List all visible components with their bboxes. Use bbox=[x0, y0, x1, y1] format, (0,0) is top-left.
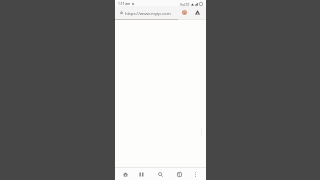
staticText: VoLTE bbox=[180, 2, 190, 6]
button[interactable]: More options bbox=[189, 168, 201, 180]
staticText: https://www.myip.com bbox=[125, 10, 171, 16]
staticText: 1:17 am bbox=[118, 2, 131, 6]
other: Site information bbox=[120, 11, 123, 14]
button[interactable]: Search bbox=[154, 168, 166, 180]
button[interactable]: Tabs bbox=[173, 168, 185, 180]
button[interactable]: Bookmarks bbox=[135, 168, 147, 180]
button[interactable]: Brave Rewards bbox=[193, 8, 202, 17]
button[interactable]: Brave Shields bbox=[180, 8, 189, 17]
button[interactable]: Home bbox=[119, 168, 131, 180]
staticText: 1 bbox=[178, 172, 181, 177]
